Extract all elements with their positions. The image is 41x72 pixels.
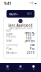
staticText: Phone [6,35,16,38]
staticText: Me [32,68,34,70]
button[interactable]: Plan [4,47,37,51]
staticText: Plan [6,47,12,51]
button[interactable]: Home [1,63,13,72]
button[interactable]: Country [4,43,37,47]
button[interactable]: Search [14,63,26,72]
staticText: Search [17,68,23,70]
staticText: Full name [6,29,13,36]
staticText: • ıl ▰ [29,1,36,5]
staticText: Jane Appleseed [8,24,32,27]
staticText: USA [30,43,35,46]
staticText: Member [6,51,17,55]
staticText: 9:41 [4,1,11,6]
staticText: jane@ic [25,39,35,42]
button[interactable]: Member [4,51,37,55]
staticText: jane@icloud.com [9,26,32,30]
staticText: Home [5,68,9,70]
staticText: Country [6,43,17,46]
button[interactable]: Phone [4,35,37,39]
staticText: Account [9,6,18,22]
button[interactable]: Full name [4,30,37,34]
button[interactable]: Email [4,39,37,43]
staticText: Pro [30,47,35,51]
staticText: 555-0100 [26,33,35,40]
staticText: 2019 [27,51,35,55]
staticText: Edit [27,12,32,15]
button[interactable]: Edit [27,12,32,15]
staticText: Jane A. [25,31,35,34]
staticText: Email [6,39,12,42]
button[interactable]: Me [27,63,39,72]
